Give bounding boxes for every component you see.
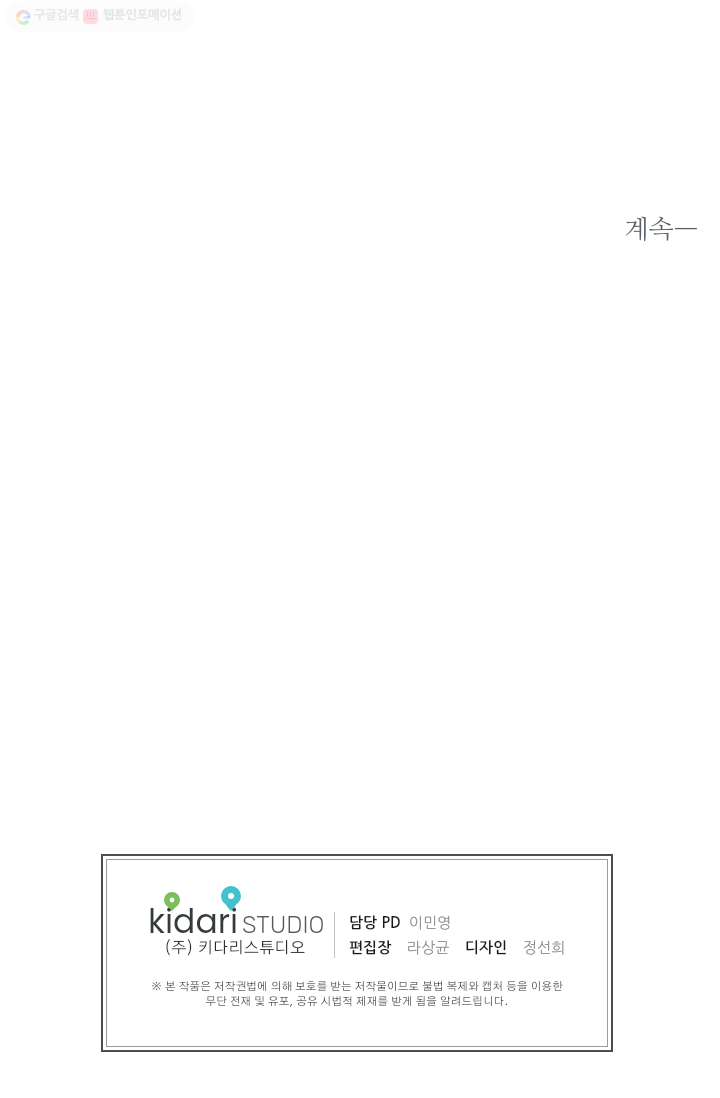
other: Webtoon information [83,9,98,24]
staticText: kidari [148,898,239,944]
staticText: 디자인 [465,940,508,955]
staticText: 이민영 [409,915,452,930]
staticText: 계속— [624,217,699,243]
staticText: 담당 PD [349,915,401,930]
staticText: 정선희 [523,940,566,955]
staticText: 구글검색 [34,9,80,21]
staticText: 라상균 [407,940,450,955]
other: Google search [16,10,31,25]
staticText: 편집장 [349,940,392,955]
staticText: ※ 본 작품은 저작권법에 의해 보호를 받는 저작물이므로 불법 복제와 캡처… [106,981,608,1007]
staticText: (주) 키다리스튜디오 [164,940,306,956]
staticText: 웹툰인포메이션 [103,9,182,21]
button[interactable]: Google search [6,1,194,32]
staticText: STUDIO [242,911,325,939]
